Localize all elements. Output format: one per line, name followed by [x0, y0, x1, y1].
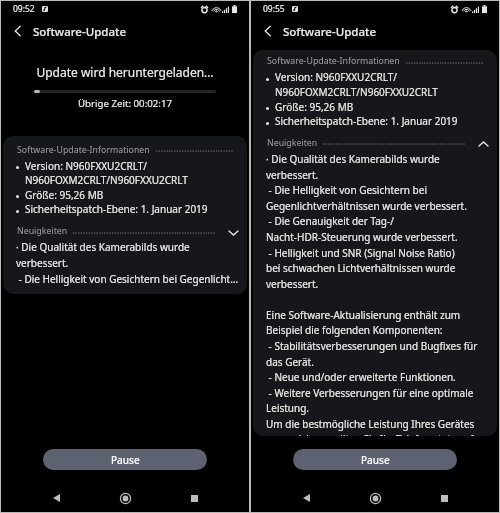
staticText: Sicherheitspatch-Ebene: 1. Januar 2019: [25, 202, 208, 216]
staticText: Größe: 95,26 MB: [25, 188, 104, 202]
staticText: N960FOXM2CRLT/N960FXXU2CRLT: [25, 173, 188, 187]
button[interactable]: Home: [114, 487, 136, 509]
staticText: Größe: 95,26 MB: [275, 100, 354, 114]
staticText: Pause: [111, 453, 140, 467]
staticText: Sicherheitspatch-Ebene: 1. Januar 2019: [275, 114, 458, 128]
staticText: · Die Qualität des Kamerabilds wurde: [266, 152, 440, 166]
staticText: Software-Update: [283, 24, 376, 40]
staticText: - Die Helligkeit von Gesichtern bei: [266, 183, 427, 197]
staticText: Eine Software-Aktualisierung enthält zum: [266, 308, 461, 322]
staticText: Übrige Zeit: 00:02:17: [1, 97, 249, 110]
staticText: - Stabilitätsverbesserungen und Bugfixes…: [266, 339, 478, 353]
button[interactable]: Back: [7, 20, 29, 42]
staticText: 09:52: [13, 3, 35, 15]
staticText: Nacht-HDR-Steuerung wurde verbessert.: [266, 230, 458, 244]
staticText: Neuigkeiten: [267, 137, 318, 149]
staticText: Update wird heruntergeladen…: [1, 64, 249, 80]
staticText: Software-Update-Informationen: [267, 55, 400, 67]
button[interactable]: Back: [257, 20, 279, 42]
staticText: N960FOXM2CRLT/N960FXXU2CRLT: [275, 85, 438, 99]
staticText: 09:55: [263, 3, 285, 15]
staticText: Beispiel die folgenden Komponenten:: [266, 323, 443, 337]
button[interactable]: Collapse: [477, 142, 489, 146]
button[interactable]: Expand: [227, 231, 239, 235]
staticText: das Gerät.: [266, 355, 314, 369]
staticText: - Neue und/oder erweiterte Funktionen.: [266, 370, 456, 384]
staticText: bei schwachen Lichtverhältnissen wurde: [266, 261, 456, 275]
staticText: Gegenlichtverhältnissen wurde verbessert…: [266, 199, 467, 213]
staticText: verbessert.: [266, 277, 319, 291]
staticText: - Helligkeit und SNR (Signal Noise Ratio…: [266, 246, 455, 260]
button[interactable]: Pause: [43, 449, 207, 470]
staticText: - Weitere Verbesserungen für eine optima…: [266, 386, 474, 400]
staticText: verbessert.: [266, 168, 319, 182]
staticText: verbessert.: [16, 256, 69, 270]
staticText: Neuigkeiten: [17, 225, 68, 237]
staticText: Software-Update-Informationen: [17, 144, 150, 156]
button[interactable]: Recent apps: [433, 487, 455, 509]
button[interactable]: Recent apps: [183, 487, 205, 509]
button[interactable]: Back: [45, 487, 67, 509]
staticText: zu erreichen, sollten Sie Ihr Telefon st…: [266, 432, 474, 436]
staticText: Um die bestmögliche Leistung Ihres Gerät…: [266, 417, 475, 431]
button[interactable]: Back: [295, 487, 317, 509]
button[interactable]: Pause: [293, 449, 457, 470]
staticText: Pause: [361, 453, 390, 467]
staticText: Version: N960FXXU2CRLT/: [275, 70, 398, 84]
staticText: Version: N960FXXU2CRLT/: [25, 159, 148, 173]
staticText: - Die Genauigkeit der Tag-/: [266, 214, 394, 228]
staticText: · Die Qualität des Kamerabilds wurde: [16, 240, 190, 254]
staticText: - Die Helligkeit von Gesichtern bei Gege…: [16, 272, 239, 286]
button[interactable]: Home: [364, 487, 386, 509]
staticText: Software-Update: [33, 24, 126, 40]
staticText: Leistung.: [266, 401, 310, 415]
